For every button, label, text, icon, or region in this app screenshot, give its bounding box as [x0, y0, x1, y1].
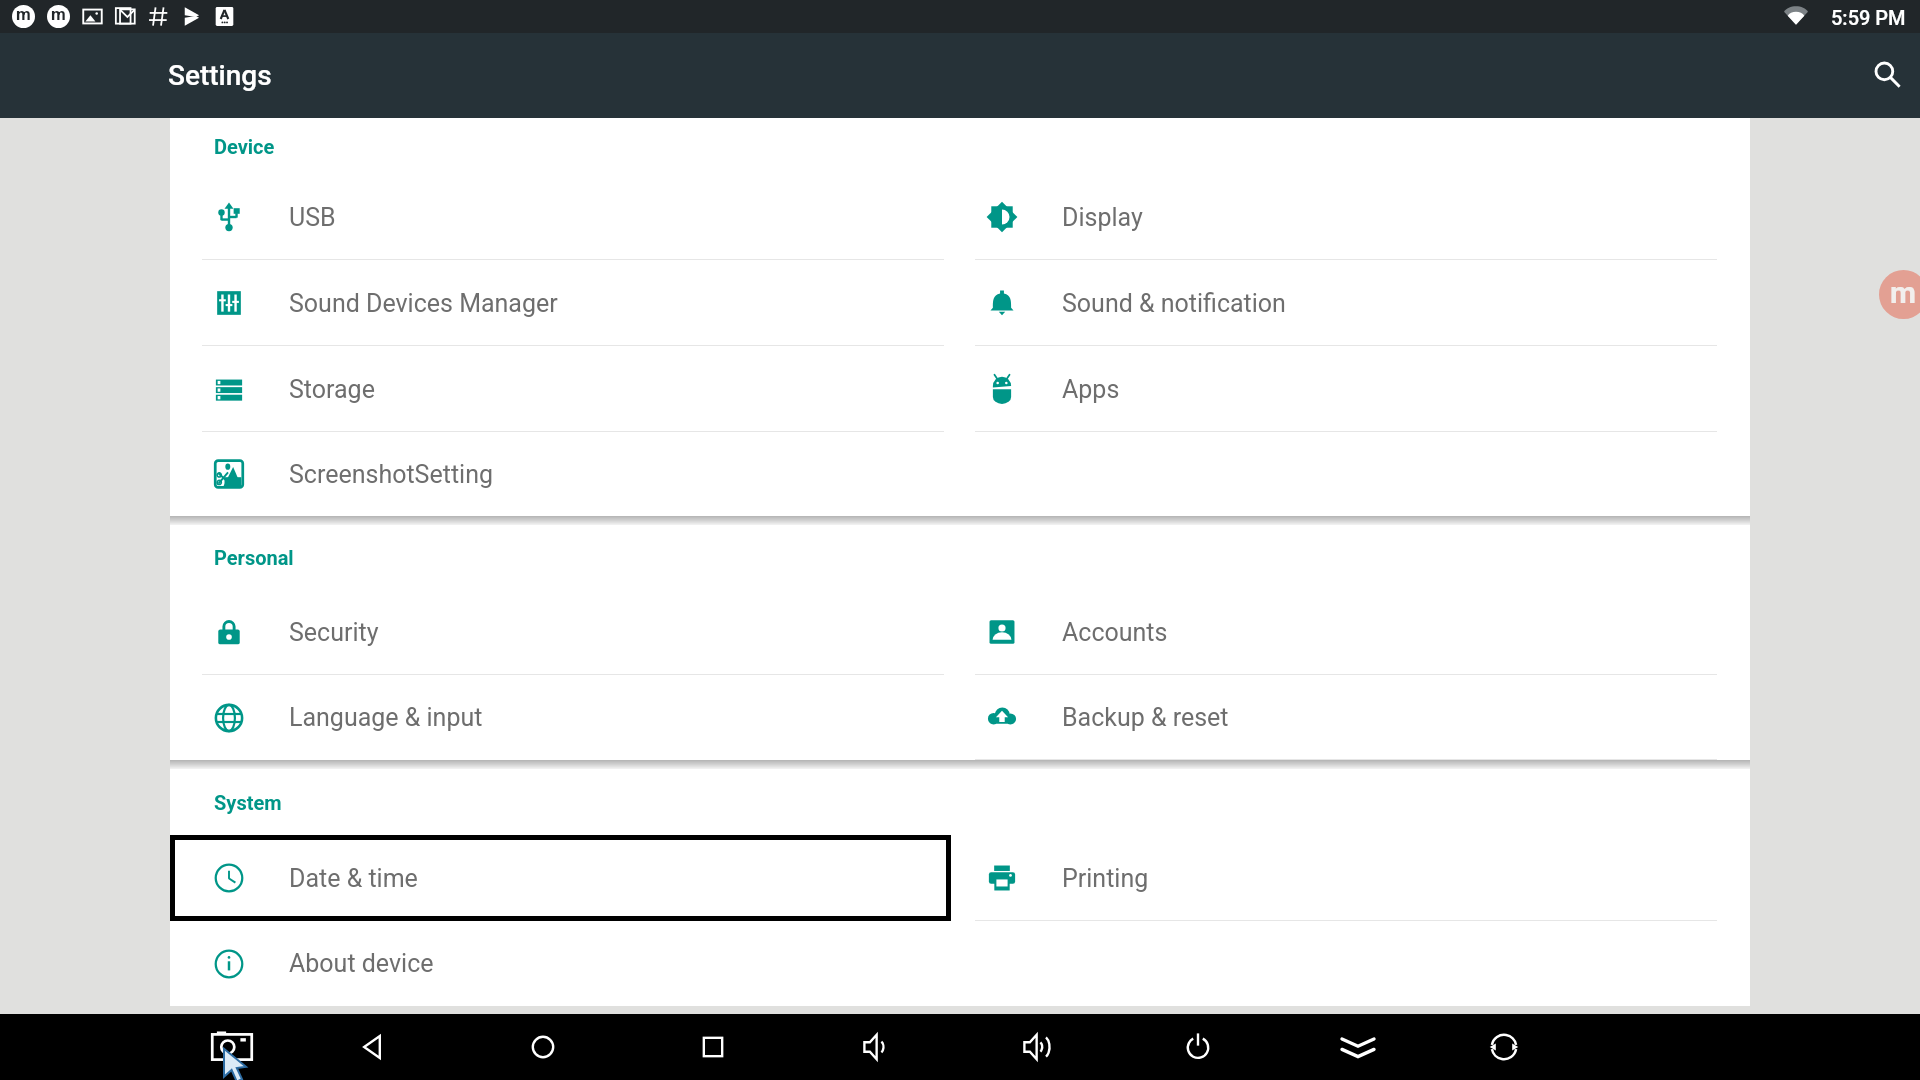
staticText: Apps: [1062, 375, 1120, 404]
staticText: Security: [289, 618, 379, 647]
button[interactable]: ScreenshotSetting: [170, 432, 942, 516]
button[interactable]: USB: [170, 174, 942, 260]
button[interactable]: Date & time: [170, 835, 942, 921]
staticText: Sound Devices Manager: [289, 289, 558, 318]
staticText: Settings: [168, 59, 272, 92]
button[interactable]: Recent apps: [683, 1014, 743, 1080]
button[interactable]: Backup & reset: [943, 675, 1715, 760]
staticText: m: [16, 5, 31, 24]
button[interactable]: Language & input: [170, 675, 942, 760]
staticText: Sound & notification: [1062, 289, 1286, 318]
staticText: Backup & reset: [1062, 703, 1229, 732]
staticText: System: [214, 791, 282, 814]
button[interactable]: Hide navigation: [1328, 1014, 1388, 1080]
button[interactable]: Search: [1863, 50, 1911, 98]
staticText: About device: [289, 949, 434, 978]
button[interactable]: Sound & notification: [943, 260, 1715, 346]
staticText: Storage: [289, 375, 375, 404]
button[interactable]: Rotate screen: [1474, 1014, 1534, 1080]
button[interactable]: Home: [513, 1014, 573, 1080]
button[interactable]: Screenshot: [202, 1014, 262, 1080]
staticText: Language & input: [289, 703, 483, 732]
staticText: ScreenshotSetting: [289, 460, 493, 489]
button[interactable]: Power: [1168, 1014, 1228, 1080]
button[interactable]: Apps: [943, 346, 1715, 432]
button[interactable]: Accounts: [943, 589, 1715, 675]
staticText: m: [51, 5, 66, 24]
staticText: Device: [214, 135, 275, 158]
staticText: Personal: [214, 546, 294, 569]
staticText: Display: [1062, 203, 1143, 232]
button[interactable]: Storage: [170, 346, 942, 432]
button[interactable]: Back: [343, 1014, 403, 1080]
staticText: USB: [289, 203, 336, 232]
button[interactable]: Security: [170, 589, 942, 675]
button[interactable]: Sound Devices Manager: [170, 260, 942, 346]
staticText: 5:59 PM: [1831, 6, 1906, 29]
staticText: m: [1890, 275, 1916, 310]
button[interactable]: Volume up: [1008, 1014, 1068, 1080]
button[interactable]: About device: [170, 921, 942, 1006]
button[interactable]: Printing: [943, 835, 1715, 921]
button[interactable]: Volume down: [848, 1014, 908, 1080]
button[interactable]: Display: [943, 174, 1715, 260]
staticText: Printing: [1062, 864, 1149, 893]
staticText: Accounts: [1062, 618, 1168, 647]
staticText: Date & time: [289, 864, 418, 893]
